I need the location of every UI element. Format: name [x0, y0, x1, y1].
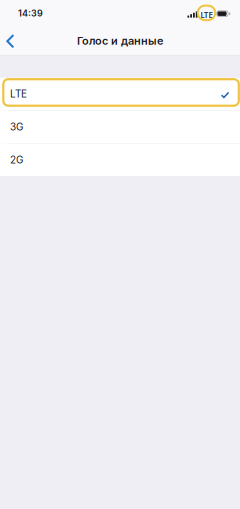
button[interactable]: 2G [0, 144, 240, 176]
staticText: LTE [10, 88, 27, 100]
button[interactable]: 3G [0, 111, 240, 143]
staticText: Голос и данные [77, 34, 163, 47]
staticText: 14:39 [18, 8, 43, 19]
button[interactable]: LTE [0, 78, 240, 110]
staticText: LTE [201, 11, 213, 20]
staticText: 3G [10, 121, 23, 133]
button[interactable]: Back [0, 26, 24, 56]
staticText: 2G [10, 154, 23, 166]
